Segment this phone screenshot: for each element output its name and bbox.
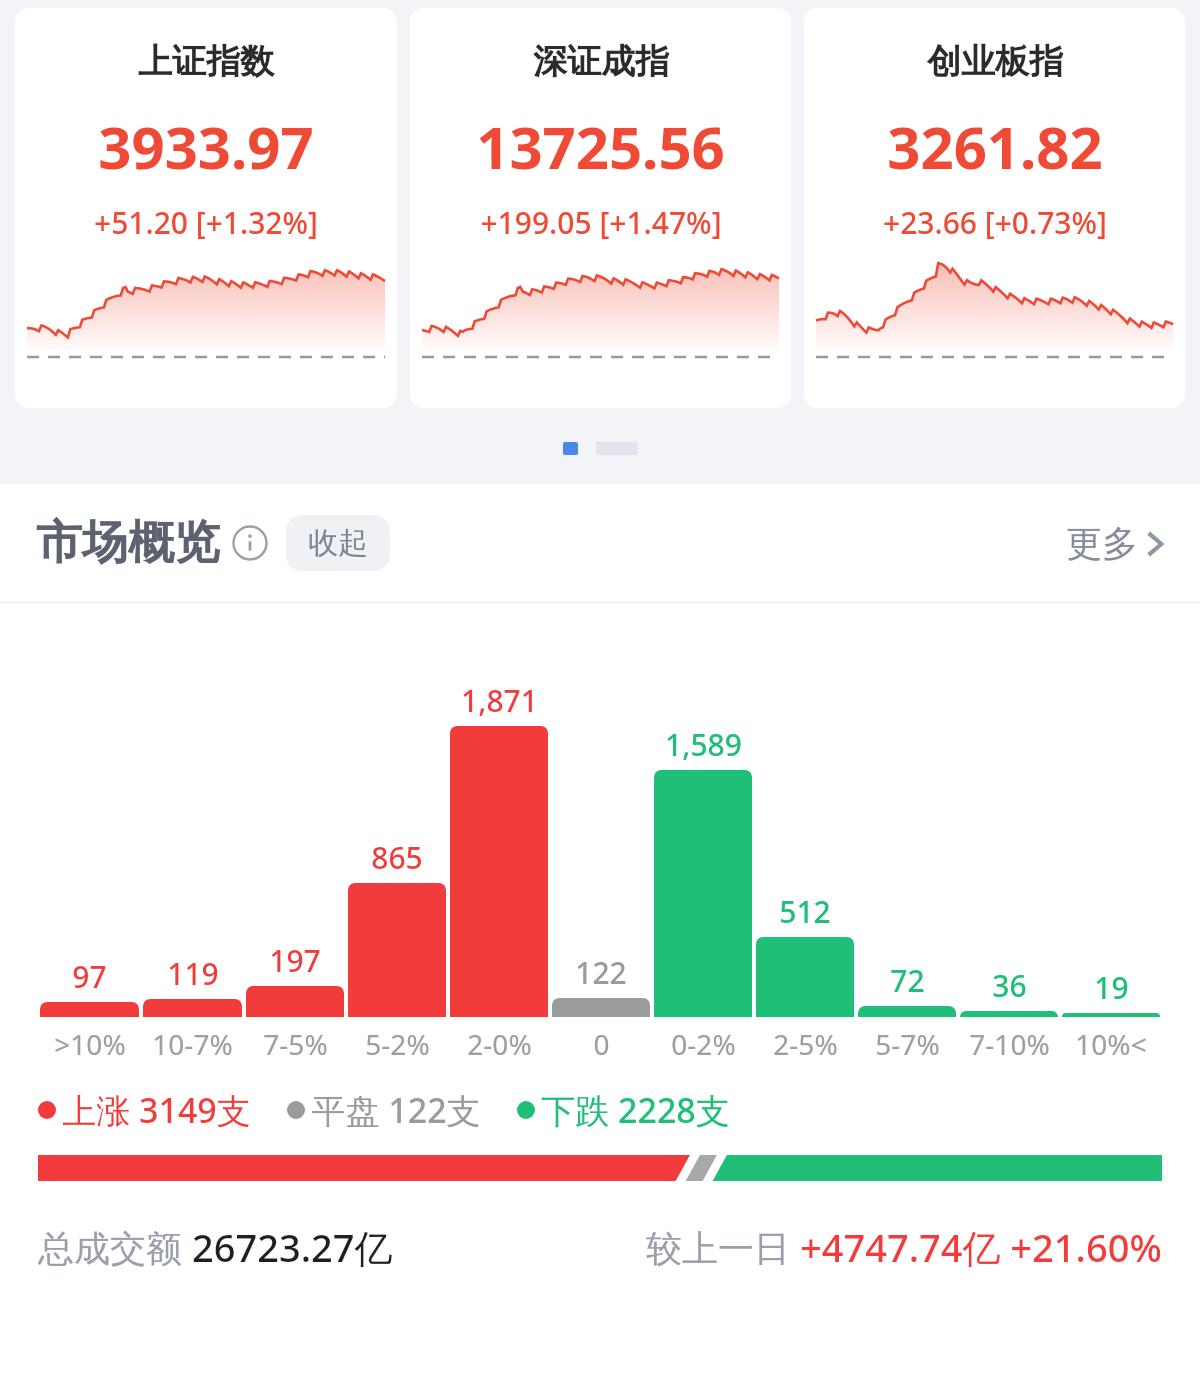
staticText: 2-5% bbox=[773, 1025, 838, 1063]
staticText: 深证成指 bbox=[533, 40, 669, 83]
button[interactable]: 收起 bbox=[286, 515, 390, 571]
staticText: 1,589 bbox=[665, 724, 742, 765]
staticText: 7-5% bbox=[263, 1025, 328, 1063]
staticText: 36 bbox=[992, 965, 1027, 1006]
staticText: 512 bbox=[779, 891, 831, 932]
staticText: 总成交额 bbox=[38, 1223, 192, 1272]
staticText: 5-7% bbox=[875, 1025, 940, 1063]
staticText: >10% bbox=[54, 1025, 126, 1063]
staticText: 72 bbox=[890, 960, 925, 1001]
staticText: 收起 bbox=[308, 524, 368, 562]
button[interactable]: Page 1 bbox=[563, 442, 578, 455]
staticText: 865 bbox=[371, 837, 423, 878]
staticText: 0-2% bbox=[671, 1025, 736, 1063]
staticText: +51.20 [+1.32%] bbox=[94, 202, 318, 243]
staticText: +4747.74亿 +21.60% bbox=[800, 1221, 1162, 1273]
staticText: 市场概览 bbox=[36, 514, 220, 572]
staticText: +199.05 [+1.47%] bbox=[480, 202, 722, 243]
staticText: 26723.27亿 bbox=[192, 1221, 393, 1273]
staticText: 上证指数 bbox=[138, 40, 274, 83]
staticText: 较上一日 bbox=[646, 1223, 800, 1272]
staticText: 1,871 bbox=[461, 680, 538, 721]
staticText: 13725.56 bbox=[476, 107, 725, 186]
staticText: 创业板指 bbox=[927, 40, 1063, 83]
staticText: 10-7% bbox=[152, 1025, 233, 1063]
button[interactable]: 更多 bbox=[1066, 521, 1164, 566]
staticText: 119 bbox=[167, 953, 219, 994]
button[interactable]: 上证指数 bbox=[15, 8, 397, 408]
button[interactable]: Information bbox=[232, 525, 268, 561]
staticText: 122 bbox=[575, 952, 627, 993]
staticText: 3933.97 bbox=[98, 107, 314, 186]
staticText: 上涨 3149支 bbox=[62, 1087, 251, 1133]
staticText: 2-0% bbox=[467, 1025, 532, 1063]
staticText: +23.66 [+0.73%] bbox=[883, 202, 1107, 243]
button[interactable]: 创业板指 bbox=[804, 8, 1185, 408]
staticText: 7-10% bbox=[969, 1025, 1050, 1063]
staticText: 197 bbox=[269, 940, 321, 981]
staticText: 更多 bbox=[1066, 521, 1138, 566]
button[interactable]: 深证成指 bbox=[410, 8, 791, 408]
staticText: 0 bbox=[593, 1025, 610, 1063]
staticText: 3261.82 bbox=[887, 107, 1103, 186]
staticText: 下跌 2228支 bbox=[541, 1087, 730, 1133]
staticText: 97 bbox=[72, 956, 107, 997]
staticText: 19 bbox=[1094, 967, 1129, 1008]
staticText: 平盘 122支 bbox=[311, 1087, 481, 1133]
staticText: 5-2% bbox=[365, 1025, 430, 1063]
staticText: 10%< bbox=[1075, 1025, 1147, 1063]
